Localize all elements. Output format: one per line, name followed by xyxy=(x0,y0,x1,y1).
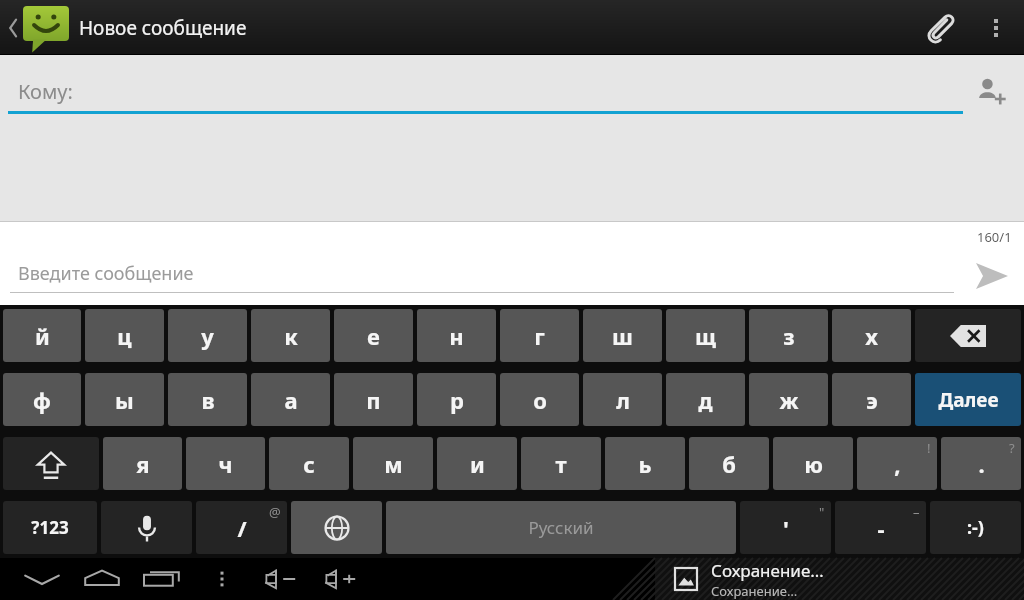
staticText: т xyxy=(555,449,567,479)
staticText: @ xyxy=(269,503,281,521)
button[interactable]: о xyxy=(500,373,579,426)
button[interactable]: / xyxy=(196,501,287,554)
staticText: ф xyxy=(33,385,51,415)
button[interactable]: и xyxy=(437,437,517,490)
staticText: ' xyxy=(783,513,789,543)
staticText: ?123 xyxy=(31,516,69,539)
button[interactable]: ' xyxy=(740,501,831,554)
button[interactable]: г xyxy=(500,309,579,362)
button[interactable]: с xyxy=(269,437,349,490)
staticText: щ xyxy=(695,321,716,351)
staticText: ш xyxy=(612,321,633,351)
button[interactable]: р xyxy=(417,373,496,426)
staticText: ь xyxy=(638,449,652,479)
button[interactable]: щ xyxy=(666,309,745,362)
button[interactable]: в xyxy=(168,373,247,426)
button[interactable]: Новое сообщение xyxy=(2,0,251,55)
staticText: п xyxy=(366,385,381,415)
button[interactable]: ц xyxy=(85,309,164,362)
staticText: ч xyxy=(218,449,233,479)
button[interactable]: Backspace xyxy=(915,309,1021,362)
button[interactable]: Send xyxy=(966,250,1018,302)
button[interactable]: - xyxy=(835,501,926,554)
button[interactable]: ь xyxy=(605,437,685,490)
button[interactable]: к xyxy=(251,309,330,362)
button[interactable]: :-) xyxy=(930,501,1021,554)
button[interactable]: ы xyxy=(85,373,164,426)
staticText: / xyxy=(237,513,247,543)
staticText: к xyxy=(284,321,298,351)
staticText: э xyxy=(866,385,878,415)
staticText: Русский xyxy=(528,516,594,539)
staticText: Новое сообщение xyxy=(79,15,247,41)
button[interactable]: п xyxy=(334,373,413,426)
button[interactable]: Hide keyboard xyxy=(12,558,72,600)
staticText: и xyxy=(470,449,485,479)
staticText: н xyxy=(449,321,464,351)
button[interactable]: я xyxy=(103,437,182,490)
button[interactable]: Volume down xyxy=(252,558,312,600)
button[interactable]: Русский xyxy=(386,501,736,554)
staticText: , xyxy=(894,449,901,479)
staticText: й xyxy=(35,321,50,351)
staticText: з xyxy=(783,321,795,351)
button[interactable]: у xyxy=(168,309,247,362)
button[interactable]: Кому: xyxy=(8,69,963,114)
button[interactable]: х xyxy=(832,309,911,362)
staticText: г xyxy=(534,321,545,351)
staticText: Введите сообщение xyxy=(18,261,194,286)
button[interactable]: Введите сообщение xyxy=(10,253,954,293)
button[interactable]: ?123 xyxy=(3,501,97,554)
staticText: е xyxy=(367,321,380,351)
staticText: у xyxy=(201,321,214,351)
button[interactable]: з xyxy=(749,309,828,362)
staticText: о xyxy=(533,385,547,415)
button[interactable]: й xyxy=(3,309,81,362)
button[interactable]: э xyxy=(832,373,911,426)
staticText: :-) xyxy=(967,515,984,540)
staticText: – xyxy=(913,503,920,521)
staticText: ж xyxy=(779,385,799,415)
button[interactable]: е xyxy=(334,309,413,362)
button[interactable]: ю xyxy=(773,437,853,490)
staticText: д xyxy=(698,385,713,415)
staticText: " xyxy=(819,503,825,521)
button[interactable]: Add contact xyxy=(966,67,1014,115)
button[interactable]: н xyxy=(417,309,496,362)
staticText: ? xyxy=(1009,439,1015,457)
button[interactable]: ж xyxy=(749,373,828,426)
button[interactable]: Volume up xyxy=(312,558,372,600)
button[interactable]: Recent apps xyxy=(132,558,192,600)
button[interactable]: Voice input xyxy=(101,501,192,554)
button[interactable]: д xyxy=(666,373,745,426)
button[interactable]: б xyxy=(689,437,769,490)
staticText: ц xyxy=(117,321,132,351)
button[interactable]: м xyxy=(353,437,433,490)
button[interactable]: Далее xyxy=(915,373,1021,426)
button[interactable]: More options xyxy=(972,0,1020,55)
button[interactable]: т xyxy=(521,437,601,490)
button[interactable]: Attach xyxy=(908,0,972,55)
button[interactable]: ш xyxy=(583,309,662,362)
button[interactable]: . xyxy=(941,437,1021,490)
button[interactable]: а xyxy=(251,373,330,426)
button[interactable]: Change language xyxy=(291,501,382,554)
button[interactable]: ч xyxy=(186,437,265,490)
button[interactable]: Home xyxy=(72,558,132,600)
button[interactable]: Сохранение… xyxy=(655,558,1024,600)
button[interactable]: л xyxy=(583,373,662,426)
staticText: л xyxy=(616,385,630,415)
staticText: м xyxy=(384,449,403,479)
staticText: Сохранение… xyxy=(711,582,798,600)
button[interactable]: , xyxy=(857,437,937,490)
button[interactable]: Shift xyxy=(3,437,99,490)
button[interactable]: ф xyxy=(3,373,81,426)
staticText: р xyxy=(450,385,464,415)
staticText: 160/1 xyxy=(977,228,1012,246)
button[interactable]: Menu xyxy=(192,558,252,600)
staticText: ю xyxy=(804,449,823,479)
staticText: в xyxy=(201,385,215,415)
staticText: . xyxy=(978,449,985,479)
staticText: ы xyxy=(115,385,134,415)
staticText: с xyxy=(303,449,315,479)
